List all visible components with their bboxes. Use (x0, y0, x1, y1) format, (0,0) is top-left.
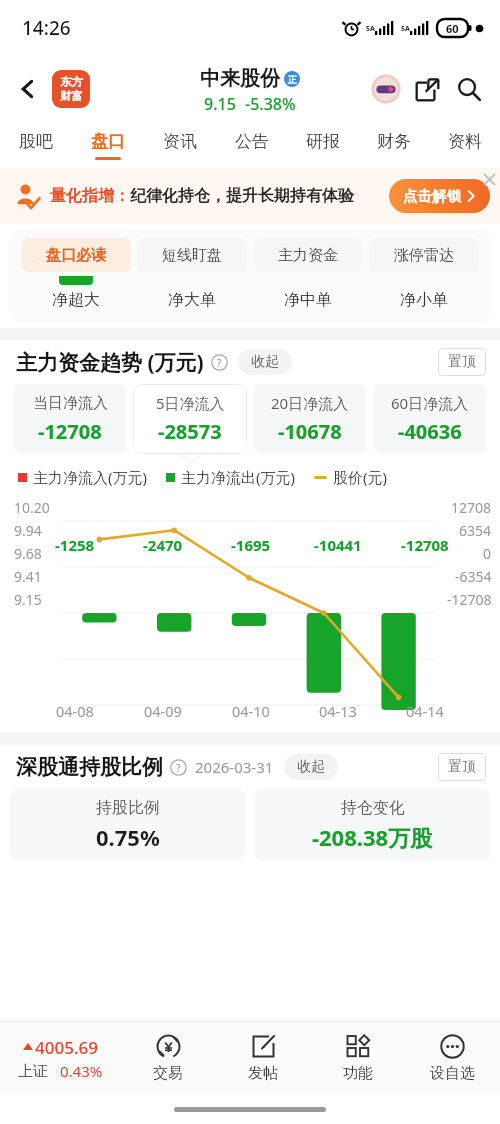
button[interactable]: 60日净流入 (373, 384, 487, 454)
button[interactable]: Search (448, 68, 490, 110)
staticText: -12708 (401, 535, 449, 555)
staticText: 涨停雷达 (394, 246, 454, 265)
staticText: 9.94 (14, 521, 42, 540)
staticText: 04-08 (56, 701, 94, 721)
staticText: -2470 (143, 535, 183, 555)
staticText: 资讯 (163, 131, 197, 152)
staticText: 公告 (235, 131, 269, 152)
button[interactable]: 资料 (429, 122, 500, 168)
staticText: 60 (446, 21, 459, 36)
staticText: 置顶 (448, 758, 476, 776)
staticText: 6354 (459, 521, 492, 540)
button[interactable]: 财务 (358, 122, 429, 168)
staticText: 置顶 (448, 353, 476, 371)
button[interactable]: Back (8, 69, 48, 109)
staticText: ? (176, 761, 181, 775)
staticText: 交易 (153, 1064, 183, 1083)
button[interactable]: 点击解锁 (389, 179, 490, 213)
staticText: 财富 (60, 89, 83, 103)
button[interactable]: 发帖 (215, 1022, 310, 1094)
staticText: 5日净流入 (156, 393, 225, 413)
button[interactable]: 主力资金 (254, 238, 362, 272)
button[interactable]: 置顶 (438, 348, 486, 376)
button[interactable]: 涨停雷达 (370, 238, 478, 272)
button[interactable]: 研报 (287, 122, 358, 168)
staticText: 上证 (18, 1062, 48, 1081)
staticText: -40636 (398, 418, 462, 445)
staticText: 股价(元) (333, 467, 388, 487)
button[interactable]: 交易 (120, 1022, 215, 1094)
button[interactable]: Help (170, 759, 187, 776)
staticText: 纪律化持仓，提升长期持有体验 (130, 186, 354, 206)
button[interactable]: 东方财富 (52, 70, 90, 108)
staticText: -6354 (455, 567, 492, 586)
staticText: 主力资金趋势 (万元) (16, 348, 204, 377)
staticText: 9.15 (14, 590, 42, 609)
button[interactable]: 净中单 (250, 276, 366, 310)
button[interactable]: 5日净流入 (133, 384, 247, 454)
button[interactable]: 收起 (284, 754, 338, 780)
staticText: -5.38% (245, 93, 296, 115)
staticText: 净小单 (400, 290, 448, 310)
staticText: 主力资金 (278, 246, 338, 265)
button[interactable]: Share (406, 68, 448, 110)
staticText: 04-09 (144, 701, 182, 721)
button[interactable]: Close (478, 168, 500, 190)
staticText: 12708 (451, 498, 492, 517)
button[interactable]: 设自选 (405, 1022, 500, 1094)
staticText: 中来股份 (200, 66, 280, 91)
staticText: 收起 (297, 758, 325, 776)
button[interactable]: 收起 (238, 349, 292, 375)
button[interactable]: 持股比例 (10, 789, 245, 861)
staticText: 04-13 (319, 701, 357, 721)
staticText: 正 (288, 74, 297, 85)
staticText: 量化指增： (50, 186, 130, 206)
button[interactable]: 20日净流入 (253, 384, 367, 454)
button[interactable]: 公告 (216, 122, 287, 168)
button[interactable]: 净超大 (18, 276, 134, 310)
staticText: -12708 (447, 590, 492, 609)
staticText: 0.75% (96, 822, 160, 852)
staticText: 收起 (251, 353, 279, 371)
button[interactable]: Profile (366, 69, 406, 109)
staticText: 0.43% (60, 1061, 103, 1081)
button[interactable]: 净大单 (134, 276, 250, 310)
staticText: 0 (483, 544, 492, 563)
staticText: 当日净流入 (33, 394, 108, 413)
button[interactable]: 功能 (310, 1022, 405, 1094)
staticText: 20日净流入 (271, 393, 349, 413)
button[interactable]: 短线盯盘 (138, 238, 246, 272)
staticText: 持仓变化 (341, 798, 405, 818)
button[interactable]: 盘口 (72, 122, 144, 168)
button[interactable]: 盘口必读 (22, 238, 130, 272)
staticText: 净大单 (168, 290, 216, 310)
button[interactable]: 净小单 (366, 276, 482, 310)
staticText: -10678 (278, 418, 342, 445)
staticText: 资料 (448, 131, 482, 152)
button[interactable]: 4005.69 (0, 1022, 120, 1094)
staticText: 主力净流入(万元) (33, 467, 148, 487)
staticText: 功能 (343, 1064, 373, 1083)
staticText: -12708 (38, 418, 102, 445)
staticText: 净超大 (52, 290, 100, 310)
staticText: 5A (366, 24, 375, 34)
staticText: 04-10 (232, 701, 270, 721)
staticText: 04-14 (406, 701, 444, 721)
staticText: -10441 (314, 535, 362, 555)
staticText: -28573 (158, 418, 222, 445)
button[interactable]: 置顶 (438, 753, 486, 781)
staticText: 研报 (306, 131, 340, 152)
staticText: 9.68 (14, 544, 42, 563)
staticText: 短线盯盘 (162, 246, 222, 265)
staticText: 60日净流入 (391, 393, 469, 413)
staticText: 净中单 (284, 290, 332, 310)
staticText: 主力净流出(万元) (181, 467, 296, 487)
staticText: 9.15 (204, 93, 236, 115)
button[interactable]: 当日净流入 (13, 384, 127, 454)
staticText: 盘口 (91, 131, 125, 152)
button[interactable]: Help (211, 354, 228, 371)
button[interactable]: 持仓变化 (255, 789, 490, 861)
button[interactable]: 股吧 (0, 122, 72, 168)
staticText: 4005.69 (35, 1036, 98, 1059)
button[interactable]: 资讯 (144, 122, 216, 168)
